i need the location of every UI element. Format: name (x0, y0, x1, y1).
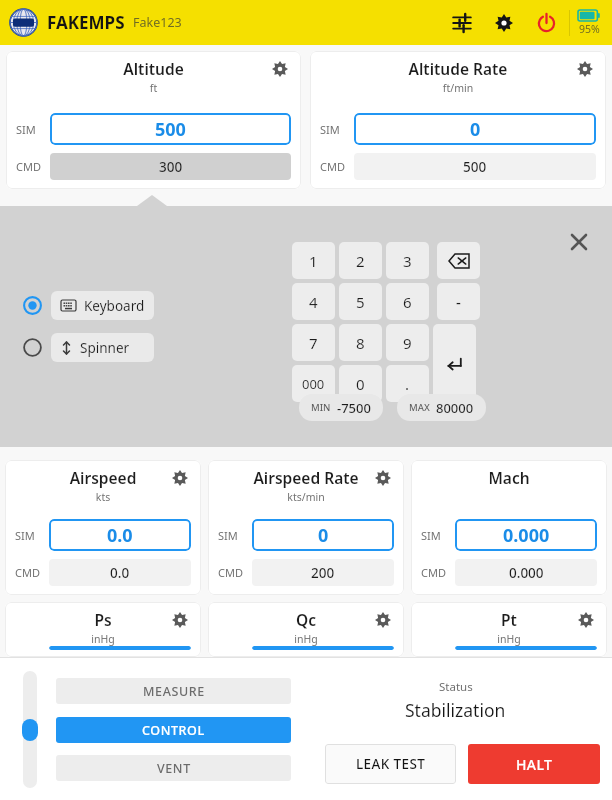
button[interactable]: Qc (208, 602, 404, 657)
button[interactable]: VENT (56, 755, 291, 781)
staticText: CMD (218, 565, 243, 580)
button[interactable]: MAX (397, 394, 486, 421)
button[interactable]: Pt settings (575, 609, 597, 631)
button[interactable]: Airspeed (5, 460, 201, 595)
button[interactable]: Altitude settings (269, 58, 291, 80)
staticText: 95% (579, 22, 600, 36)
button[interactable]: Spinner (22, 333, 154, 362)
button[interactable]: 1 (292, 242, 335, 279)
staticText: 9 (403, 333, 412, 353)
button[interactable]: 0.0 (49, 559, 191, 586)
staticText: 500 (463, 158, 487, 176)
staticText: . (405, 374, 410, 394)
button[interactable]: MEASURE (56, 678, 291, 704)
button[interactable]: Close keypad (564, 227, 594, 257)
button[interactable]: 0.000 (455, 559, 597, 586)
button[interactable]: Qc settings (372, 609, 394, 631)
staticText: 3 (403, 251, 412, 271)
staticText: SIM (16, 122, 36, 137)
button[interactable]: Ps (5, 602, 201, 657)
button[interactable]: Airspeed Rate (208, 460, 404, 595)
button[interactable]: Mach (411, 460, 607, 595)
staticText: Pt (421, 609, 597, 630)
button[interactable]: 0.00 (252, 646, 394, 650)
button[interactable]: Keyboard (22, 291, 154, 320)
staticText: inHg (421, 632, 597, 646)
button[interactable]: HALT (468, 744, 600, 784)
staticText: MAX (409, 401, 430, 414)
button[interactable]: 4 (292, 283, 335, 320)
button[interactable]: Altitude Rate settings (574, 58, 596, 80)
button[interactable]: 0 (252, 519, 394, 551)
button[interactable]: 5 (339, 283, 382, 320)
button[interactable]: 0.00 (49, 646, 191, 650)
staticText: Status (439, 679, 473, 695)
button[interactable]: 500 (354, 153, 596, 180)
button[interactable]: 0 (354, 113, 596, 145)
staticText: 80000 (436, 399, 474, 417)
button[interactable]: CONTROL (56, 717, 291, 743)
staticText: VENT (157, 760, 191, 777)
staticText: 0.000 (503, 523, 550, 548)
staticText: CMD (320, 159, 345, 174)
staticText: 0.000 (509, 564, 544, 582)
staticText: SIM (320, 122, 340, 137)
button[interactable]: Mode slider (22, 719, 38, 741)
staticText: 0 (470, 117, 481, 142)
button[interactable]: 8 (339, 324, 382, 361)
staticText: 1 (309, 251, 318, 271)
staticText: 200 (311, 564, 335, 582)
button[interactable]: Altitude (6, 51, 301, 189)
staticText: 000 (302, 375, 325, 393)
button[interactable]: 7 (292, 324, 335, 361)
button[interactable]: Ps settings (169, 609, 191, 631)
button[interactable]: 2 (339, 242, 382, 279)
staticText: FAKEMPS (47, 11, 125, 34)
button[interactable]: 000 (292, 365, 335, 402)
staticText: Airspeed Rate (218, 467, 394, 488)
staticText: -7500 (337, 399, 371, 417)
button[interactable]: 0.00 (455, 646, 597, 650)
button[interactable]: Minus (437, 283, 480, 320)
button[interactable]: . (386, 365, 429, 402)
button[interactable]: Enter (433, 324, 476, 402)
button[interactable]: Power (529, 6, 563, 40)
button[interactable]: 500 (50, 113, 291, 145)
staticText: Airspeed (15, 467, 191, 488)
button[interactable]: 3 (386, 242, 429, 279)
button[interactable]: Altitude Rate (310, 51, 606, 189)
staticText: MEASURE (143, 683, 205, 700)
button[interactable]: Tuning (445, 6, 479, 40)
staticText: Keyboard (84, 297, 145, 315)
staticText: CMD (16, 159, 41, 174)
staticText: Fake123 (133, 14, 182, 31)
button[interactable]: 9 (386, 324, 429, 361)
staticText: SIM (218, 528, 238, 543)
button[interactable]: 0.0 (49, 519, 191, 551)
button[interactable]: Airspeed Rate settings (372, 467, 394, 489)
staticText: ft (16, 81, 291, 95)
staticText: kts/min (218, 490, 394, 504)
button[interactable]: MIN (299, 394, 383, 421)
staticText: inHg (15, 632, 191, 646)
staticText: HALT (516, 755, 553, 774)
staticText: SIM (421, 528, 441, 543)
button[interactable]: Pt (411, 602, 607, 657)
button[interactable]: Backspace (437, 242, 480, 279)
button[interactable]: Airspeed settings (169, 467, 191, 489)
staticText: 0.0 (110, 564, 130, 582)
button[interactable]: Settings (487, 6, 521, 40)
staticText: SIM (15, 528, 35, 543)
staticText: ft/min (320, 81, 596, 95)
button[interactable]: Battery 95% (578, 10, 600, 36)
button[interactable]: 300 (50, 153, 291, 180)
button[interactable]: LEAK TEST (325, 744, 456, 784)
button[interactable]: 0.000 (455, 519, 597, 551)
button[interactable]: 6 (386, 283, 429, 320)
button[interactable]: 0 (339, 365, 382, 402)
staticText: 300 (159, 158, 183, 176)
staticText: CMD (15, 565, 40, 580)
button[interactable]: 200 (252, 559, 394, 586)
